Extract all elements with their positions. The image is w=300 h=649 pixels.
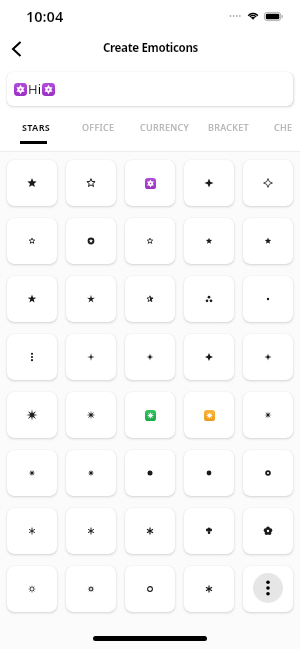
button[interactable]: Symbol 36 [7,566,57,612]
button[interactable]: Symbol 24 [184,392,234,438]
button[interactable]: OFFICE [82,115,115,139]
button[interactable]: Symbol 15 [243,276,293,322]
button[interactable]: Symbol 34 [184,508,234,554]
button[interactable]: Symbol 35 [243,508,293,554]
button[interactable]: Symbol 31 [7,508,57,554]
button[interactable]: Symbol 27 [66,450,116,496]
staticText: Create Emoticons [103,40,198,56]
button[interactable]: Symbol 26 [7,450,57,496]
staticText: 10:04 [26,6,64,26]
button[interactable]: Symbol 37 [66,566,116,612]
button[interactable]: Symbol 30 [243,450,293,496]
button[interactable]: Symbol 22 [66,392,116,438]
button[interactable]: Symbol 3 [125,160,175,206]
button[interactable]: Back [2,34,32,64]
button[interactable]: Symbol 11 [7,276,57,322]
staticText: OFFICE [82,121,115,133]
button[interactable]: Symbol 32 [66,508,116,554]
staticText: Hi [28,80,41,98]
button[interactable]: Symbol 25 [243,392,293,438]
button[interactable]: CURRENCY [140,115,190,139]
button[interactable]: Symbol 29 [184,450,234,496]
button[interactable]: Symbol 10 [243,218,293,264]
button[interactable]: Symbol 33 [125,508,175,554]
button[interactable]: Hi [7,72,293,106]
staticText: BRACKET [208,121,249,133]
button[interactable]: Symbol 38 [125,566,175,612]
button[interactable]: Symbol 9 [184,218,234,264]
button[interactable]: Symbol 8 [125,218,175,264]
button[interactable]: CHE [274,115,293,139]
button[interactable]: Symbol 21 [7,392,57,438]
button[interactable]: Symbol 18 [125,334,175,380]
button[interactable]: Symbol 7 [66,218,116,264]
button[interactable]: Symbol 28 [125,450,175,496]
staticText: CURRENCY [140,121,190,133]
button[interactable]: Symbol 13 [125,276,175,322]
button[interactable]: More options [253,573,283,603]
button[interactable]: Symbol 14 [184,276,234,322]
button[interactable]: Symbol 12 [66,276,116,322]
button[interactable]: Symbol 23 [125,392,175,438]
button[interactable]: Symbol 40 [243,566,293,612]
button[interactable]: Symbol 39 [184,566,234,612]
button[interactable]: Symbol 2 [66,160,116,206]
button[interactable]: Symbol 1 [7,160,57,206]
button[interactable]: Symbol 16 [7,334,57,380]
staticText: CHE [274,121,293,133]
button[interactable]: BRACKET [208,115,249,139]
button[interactable]: Symbol 4 [184,160,234,206]
button[interactable]: Symbol 19 [184,334,234,380]
button[interactable]: Symbol 20 [243,334,293,380]
button[interactable]: Symbol 5 [243,160,293,206]
button[interactable]: Symbol 6 [7,218,57,264]
button[interactable]: STARS [22,115,51,139]
button[interactable]: Symbol 17 [66,334,116,380]
staticText: STARS [22,121,51,133]
